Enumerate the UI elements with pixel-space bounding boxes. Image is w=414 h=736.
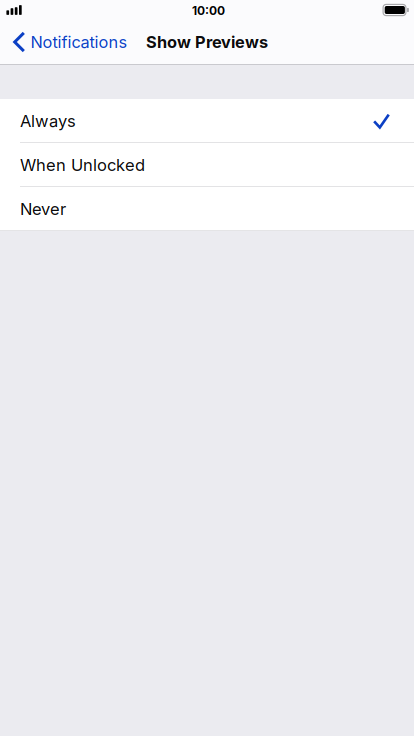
staticText: Notifications: [30, 32, 127, 52]
staticText: 10:00: [192, 3, 225, 18]
button[interactable]: Never: [0, 187, 414, 230]
staticText: Show Previews: [146, 32, 268, 52]
button[interactable]: Notifications: [0, 20, 137, 64]
staticText: When Unlocked: [20, 155, 145, 175]
button[interactable]: Always: [0, 99, 414, 143]
staticText: Never: [20, 199, 66, 219]
button[interactable]: When Unlocked: [0, 143, 414, 187]
staticText: Always: [20, 111, 76, 131]
